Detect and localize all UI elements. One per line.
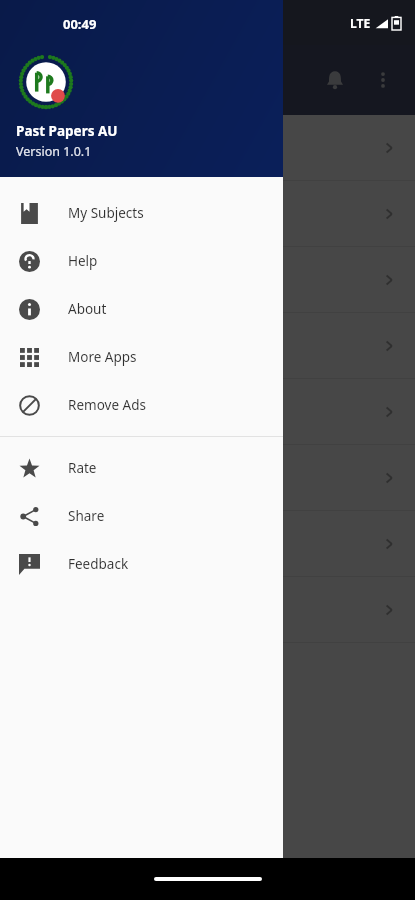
staticText: 00:49 xyxy=(63,15,97,33)
button[interactable]: Rate xyxy=(0,444,283,492)
staticText: Feedback xyxy=(68,555,129,573)
staticText: Help xyxy=(68,252,98,270)
button[interactable]: Notifications xyxy=(311,56,359,104)
staticText: My Subjects xyxy=(68,204,144,222)
staticText: More Apps xyxy=(68,348,137,366)
button[interactable] xyxy=(0,445,415,511)
staticText: About xyxy=(68,300,107,318)
staticText: Remove Ads xyxy=(68,396,146,414)
button[interactable]: About xyxy=(0,285,283,333)
button[interactable] xyxy=(0,115,415,181)
staticText: Version 1.0.1 xyxy=(16,143,92,160)
button[interactable]: Feedback xyxy=(0,540,283,588)
button[interactable] xyxy=(0,577,415,643)
button[interactable]: My Subjects xyxy=(0,189,283,237)
button[interactable]: More options xyxy=(359,56,407,104)
staticText: Past Papers AU xyxy=(16,122,118,140)
staticText: Rate xyxy=(68,459,97,477)
button[interactable] xyxy=(0,313,415,379)
button[interactable] xyxy=(0,247,415,313)
button[interactable] xyxy=(0,511,415,577)
button[interactable]: Help xyxy=(0,237,283,285)
button[interactable]: Remove Ads xyxy=(0,381,283,429)
button[interactable] xyxy=(0,181,415,247)
button[interactable]: More Apps xyxy=(0,333,283,381)
staticText: Share xyxy=(68,507,105,525)
button[interactable] xyxy=(0,379,415,445)
staticText: LTE xyxy=(350,15,371,31)
button[interactable]: Share xyxy=(0,492,283,540)
